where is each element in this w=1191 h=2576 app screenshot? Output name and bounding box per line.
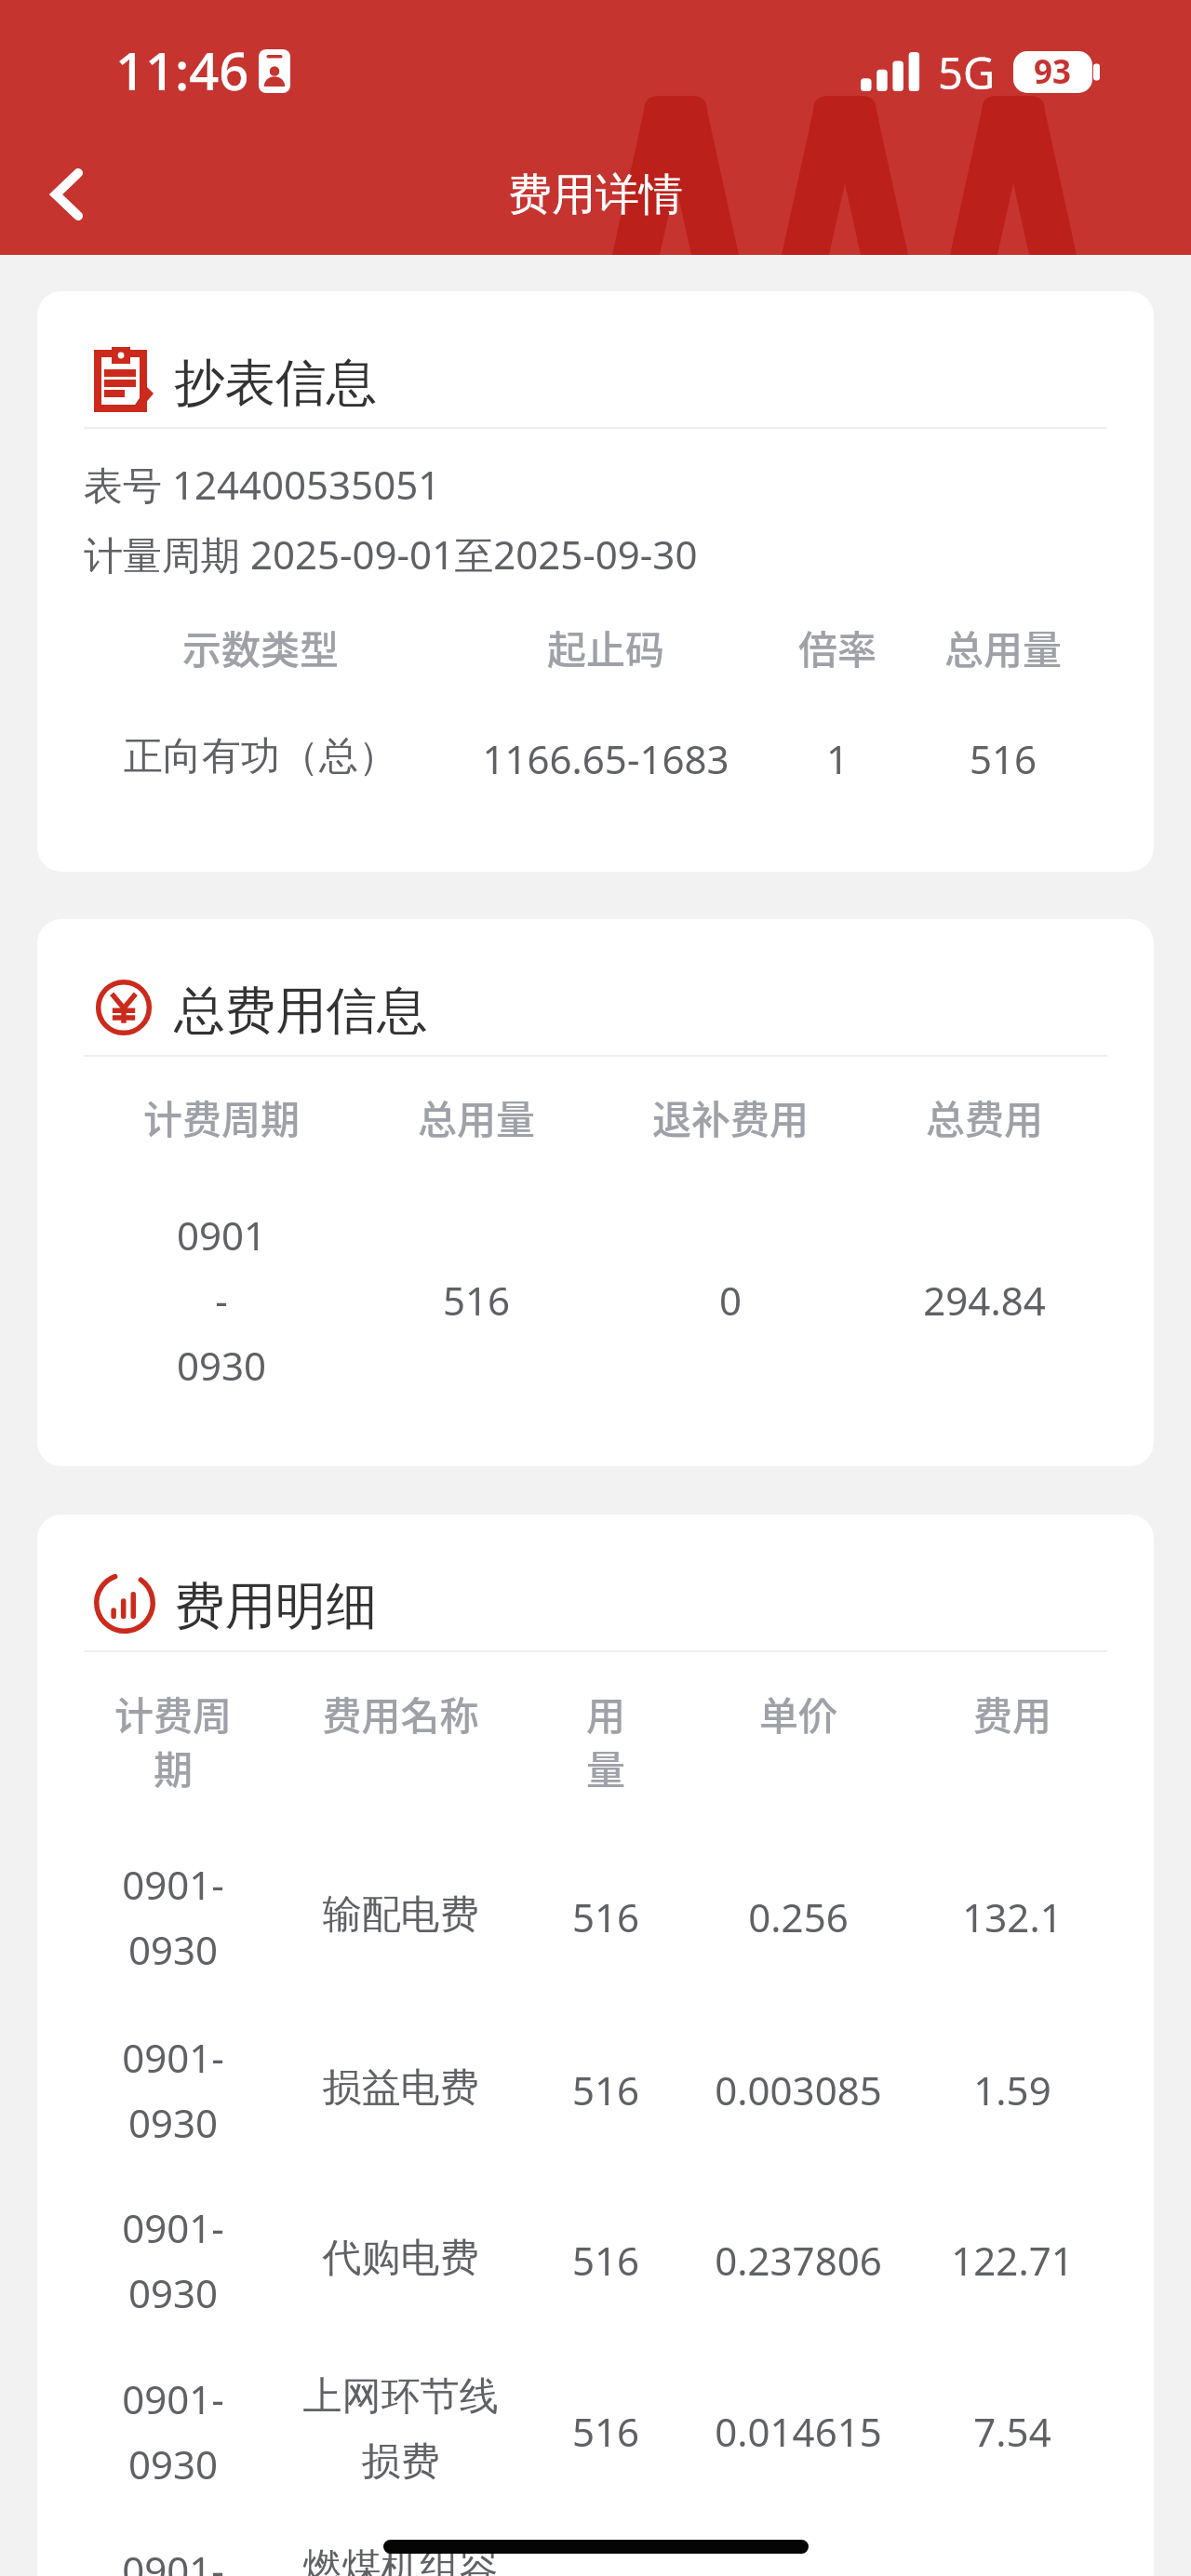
staticText: 122.71: [924, 2234, 1101, 2287]
staticText: 5G: [938, 43, 996, 102]
staticText: 起止码: [480, 619, 731, 675]
staticText: 费用详情: [508, 167, 683, 222]
staticText: 516: [559, 2405, 652, 2458]
button[interactable]: Back: [16, 143, 118, 246]
staticText: 示数类型: [112, 619, 409, 675]
staticText: 0.256: [691, 1890, 905, 1943]
staticText: 0901- 0930: [103, 2543, 243, 2576]
staticText: 132.1: [924, 1890, 1101, 1943]
staticText: 燃煤机组容 量电费: [296, 2543, 505, 2576]
staticText: 0901- 0930: [103, 2372, 243, 2490]
staticText: 11:46: [115, 34, 249, 105]
staticText: 费用名称: [296, 1685, 505, 1742]
staticText: 0901- 0930: [103, 2031, 243, 2149]
staticText: 93: [1034, 49, 1072, 94]
staticText: 0.003085: [691, 2063, 905, 2116]
staticText: 输配电费: [296, 1890, 505, 1940]
staticText: 7.54: [924, 2405, 1101, 2458]
staticText: 倍率: [763, 619, 912, 675]
staticText: 516: [388, 1274, 565, 1327]
staticText: 抄表信息: [174, 352, 377, 413]
staticText: 516: [559, 2063, 652, 2116]
staticText: 0901- 0930: [103, 1858, 243, 1976]
staticText: 总费用信息: [174, 980, 428, 1041]
staticText: 516: [559, 2234, 652, 2287]
staticText: 总用量: [910, 619, 1096, 675]
staticText: 1.59: [924, 2063, 1101, 2116]
staticText: 516: [910, 732, 1096, 785]
staticText: 0.237806: [691, 2234, 905, 2287]
staticText: 正向有功（总）: [112, 732, 409, 781]
staticText: 代购电费: [296, 2234, 505, 2283]
staticText: 计费周期: [128, 1088, 314, 1145]
staticText: 损益电费: [296, 2063, 505, 2113]
staticText: 0901- 0930: [103, 2201, 243, 2319]
staticText: 表号 124400535051: [84, 458, 441, 511]
staticText: 516: [559, 1890, 652, 1943]
staticText: 计量周期 2025-09-01至2025-09-30: [84, 527, 698, 581]
staticText: 1: [763, 732, 912, 785]
staticText: 退补费用: [623, 1088, 837, 1145]
staticText: 费用明细: [174, 1575, 377, 1636]
staticText: 上网环节线 损费: [296, 2372, 505, 2487]
staticText: 294.84: [877, 1274, 1091, 1327]
staticText: 1166.65-1683: [480, 732, 731, 785]
staticText: 0.014615: [691, 2405, 905, 2458]
staticText: 0: [623, 1274, 837, 1327]
staticText: 总用量: [388, 1088, 565, 1145]
staticText: 单价: [691, 1685, 905, 1742]
staticText: 计费周期: [103, 1685, 243, 1795]
staticText: 0901 - 0930: [128, 1208, 314, 1392]
staticText: 用量: [582, 1685, 630, 1795]
staticText: 费用: [924, 1685, 1101, 1742]
staticText: 总费用: [877, 1088, 1091, 1145]
